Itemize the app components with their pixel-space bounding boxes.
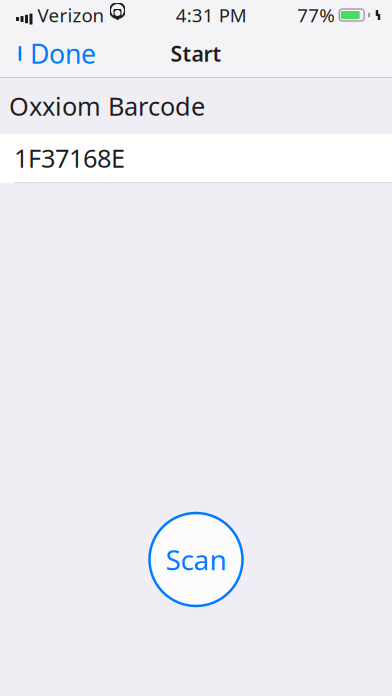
staticText: 1F37168E (14, 141, 125, 175)
staticText: Verizon (37, 3, 104, 27)
staticText: Start (170, 39, 221, 68)
staticText: Oxxiom Barcode (9, 89, 205, 123)
staticText: Scan (165, 541, 226, 578)
staticText: 4:31 PM (176, 3, 247, 27)
button[interactable]: Done (0, 28, 106, 79)
button[interactable]: Scan (149, 513, 242, 606)
staticText: 77% (297, 3, 335, 27)
staticText: Done (30, 36, 96, 71)
